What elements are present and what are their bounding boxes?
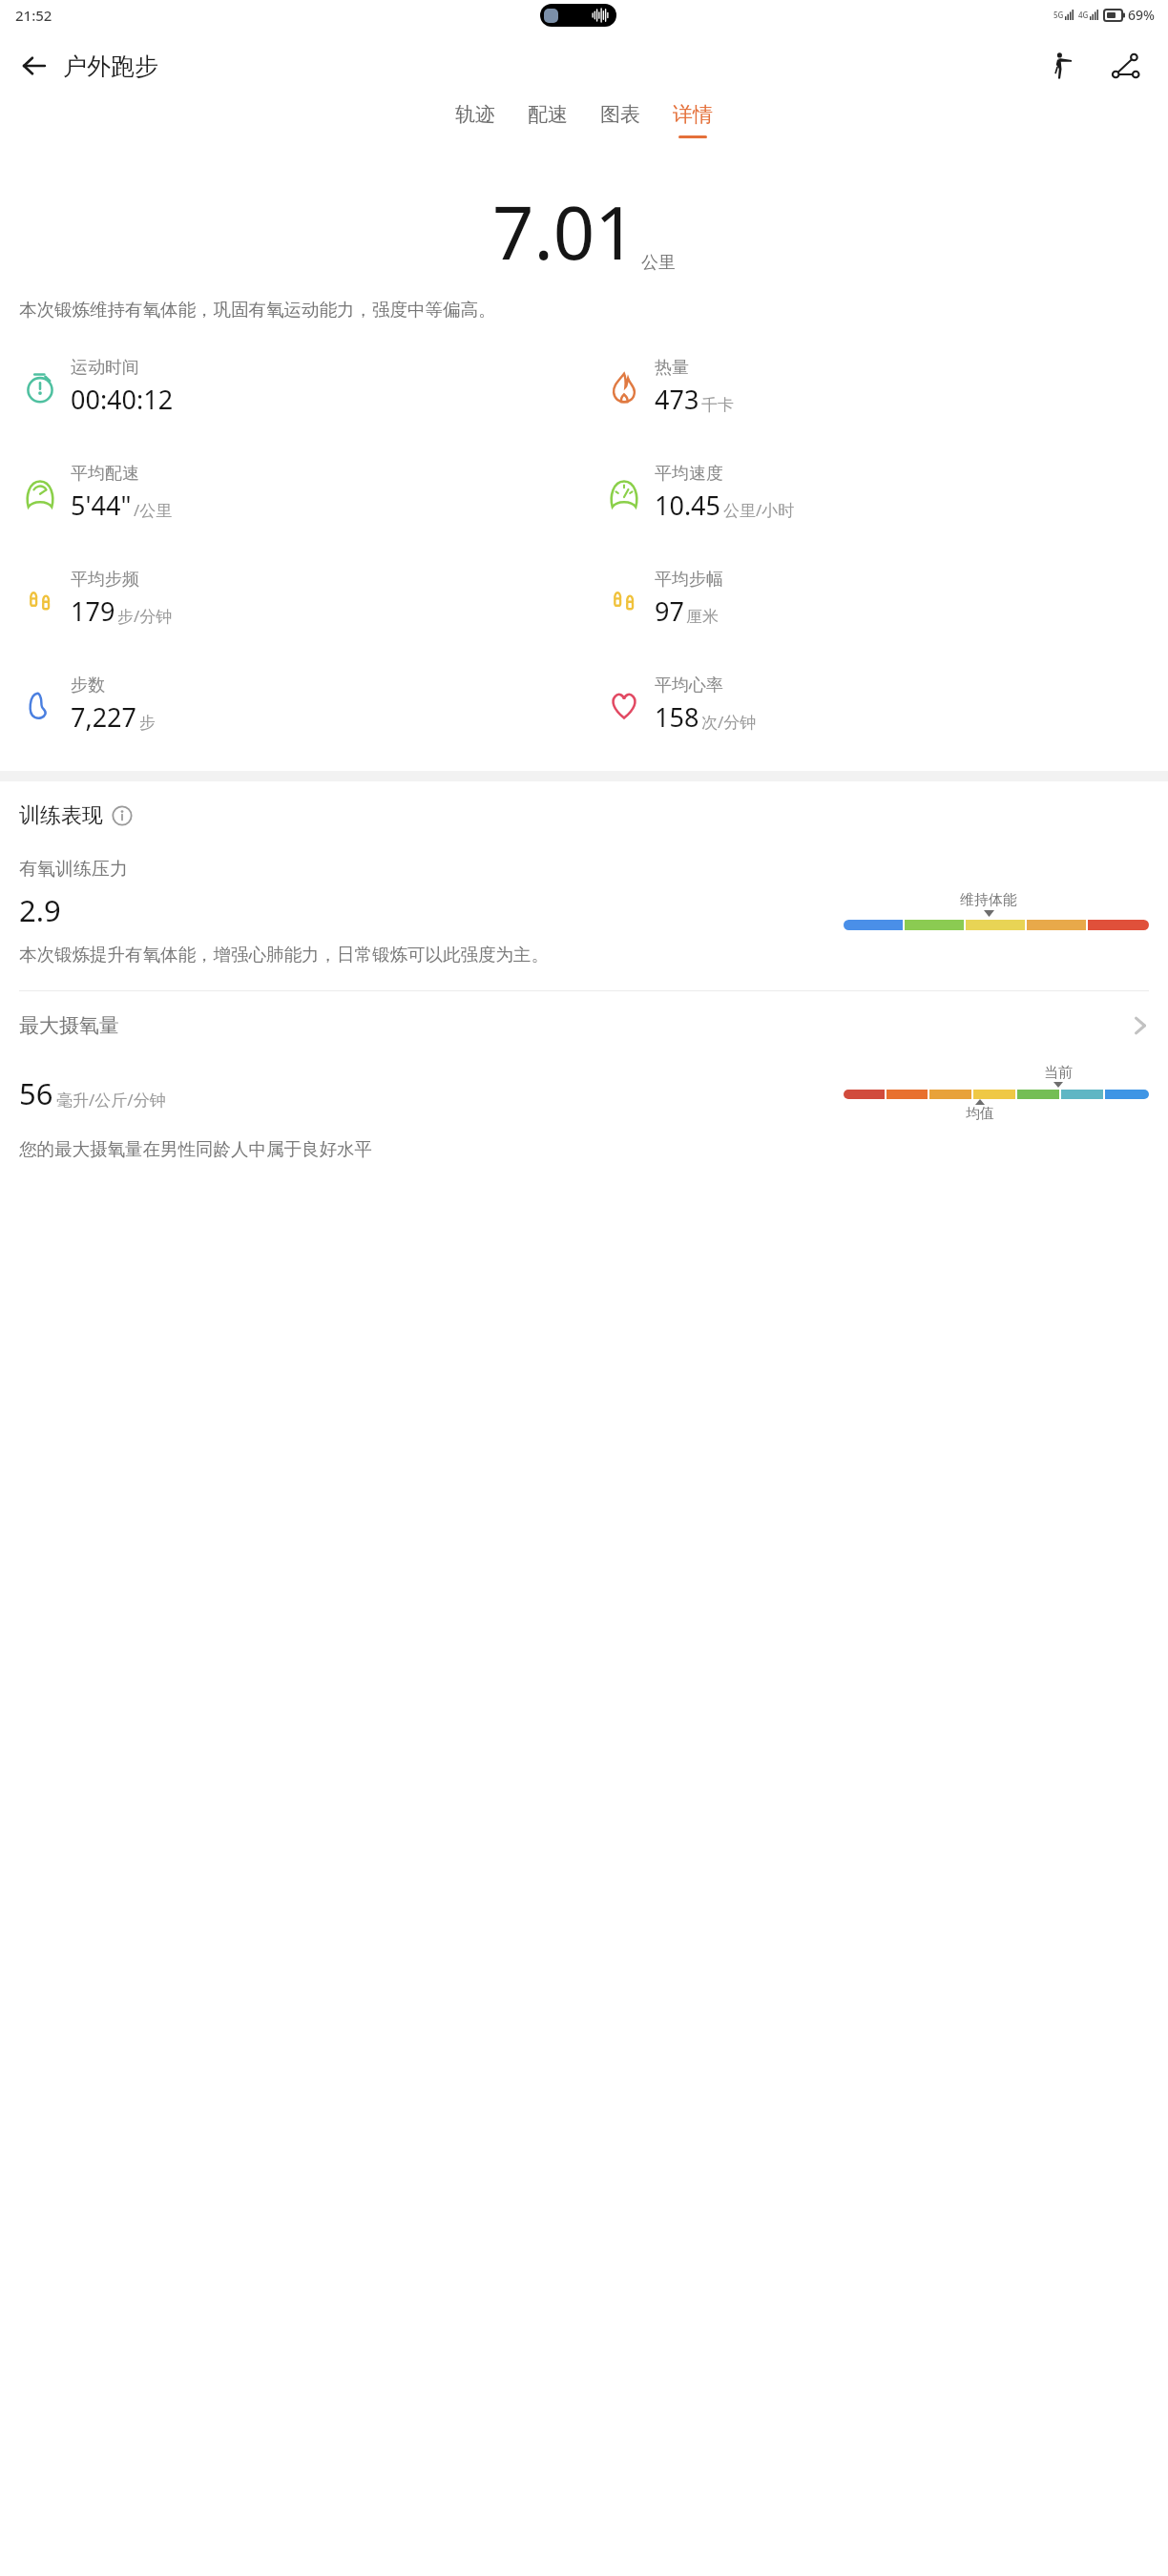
staticText: 平均步频	[71, 569, 139, 591]
staticText: 10.45	[655, 488, 721, 523]
button[interactable]: 运动时间	[21, 334, 584, 440]
staticText: 公里/小时	[723, 499, 795, 521]
button[interactable]: 最大摄氧量	[19, 1012, 1149, 1039]
staticText: 配速	[528, 102, 568, 127]
staticText: 平均步幅	[655, 569, 723, 591]
staticText: 毫升/公斤/分钟	[56, 1089, 166, 1111]
staticText: 次/分钟	[701, 711, 757, 733]
staticText: 千卡	[701, 395, 734, 415]
staticText: 运动时间	[71, 357, 139, 379]
staticText: 2.9	[19, 890, 61, 930]
staticText: 均值	[966, 1105, 994, 1123]
staticText: 户外跑步	[63, 52, 158, 81]
staticText: /公里	[134, 499, 173, 521]
staticText: 69%	[1128, 6, 1155, 24]
staticText: 有氧训练压力	[19, 858, 128, 881]
staticText: 平均配速	[71, 463, 139, 485]
staticText: 步数	[71, 675, 105, 696]
staticText: 00:40:12	[71, 382, 174, 417]
staticText: 平均心率	[655, 675, 723, 696]
staticText: 5G	[1053, 10, 1064, 20]
staticText: 维持体能	[960, 891, 1017, 909]
staticText: 158	[655, 699, 699, 735]
staticText: 473	[655, 382, 699, 417]
button[interactable]: 详情	[673, 102, 713, 138]
staticText: 平均速度	[655, 463, 723, 485]
staticText: 图表	[600, 102, 640, 127]
button[interactable]: 平均步频	[21, 546, 584, 652]
staticText: 21:52	[15, 6, 52, 25]
staticText: 56	[19, 1073, 53, 1113]
button[interactable]: 平均速度	[605, 440, 1168, 546]
staticText: 当前	[1044, 1064, 1073, 1082]
staticText: 本次锻炼维持有氧体能，巩固有氧运动能力，强度中等偏高。	[19, 299, 1149, 321]
button[interactable]: 轨迹	[455, 102, 495, 138]
button[interactable]: 步数	[21, 652, 584, 758]
button[interactable]: 图表	[600, 102, 640, 138]
staticText: 训练表现	[19, 802, 103, 829]
staticText: 步/分钟	[117, 605, 173, 627]
button[interactable]: 配速	[528, 102, 568, 138]
button[interactable]: Info	[112, 805, 133, 826]
button[interactable]: 平均步幅	[605, 546, 1168, 652]
staticText: 步	[139, 713, 156, 733]
staticText: 您的最大摄氧量在男性同龄人中属于良好水平	[19, 1138, 372, 1160]
button[interactable]: Share	[1101, 41, 1151, 91]
staticText: 179	[71, 593, 115, 629]
staticText: 详情	[673, 102, 713, 127]
staticText: 最大摄氧量	[19, 1013, 119, 1038]
staticText: 7.01	[492, 182, 636, 281]
button[interactable]: 热量	[605, 334, 1168, 440]
button[interactable]: 平均配速	[21, 440, 584, 546]
staticText: 轨迹	[455, 102, 495, 127]
staticText: 厘米	[686, 607, 719, 627]
button[interactable]: Back	[8, 39, 61, 93]
staticText: 7,227	[71, 699, 137, 735]
staticText: 4G	[1078, 10, 1089, 20]
button[interactable]: Body data	[1038, 41, 1088, 91]
staticText: 热量	[655, 357, 689, 379]
staticText: 本次锻炼提升有氧体能，增强心肺能力，日常锻炼可以此强度为主。	[19, 944, 549, 966]
staticText: 公里	[641, 252, 676, 274]
button[interactable]: 平均心率	[605, 652, 1168, 758]
staticText: 5'44"	[71, 488, 132, 523]
staticText: 97	[655, 593, 684, 629]
